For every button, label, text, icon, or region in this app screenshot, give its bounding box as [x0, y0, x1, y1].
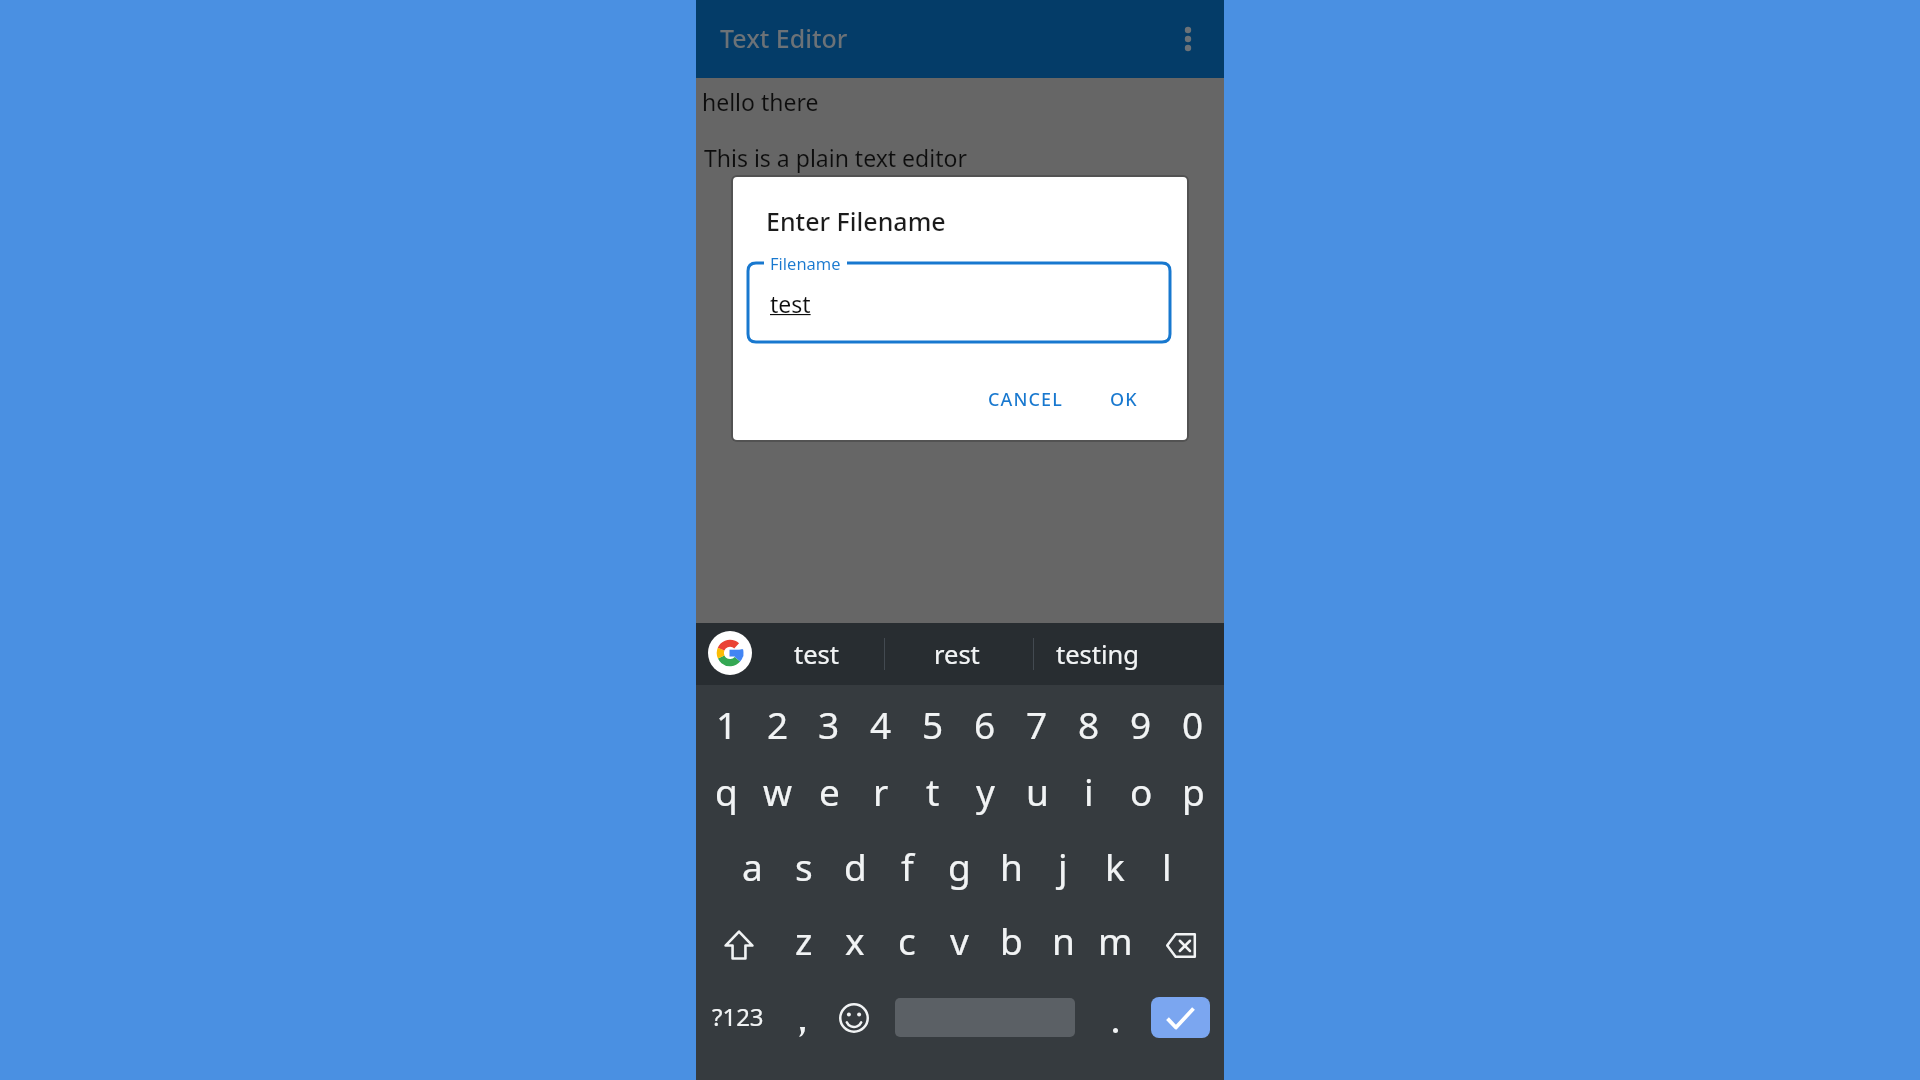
button[interactable]: m: [1089, 903, 1141, 976]
staticText: Enter Filename: [766, 204, 946, 238]
button[interactable]: Shift: [700, 908, 777, 981]
staticText: q: [715, 766, 738, 816]
staticText: hello there: [702, 86, 819, 117]
staticText: b: [1000, 915, 1023, 965]
button[interactable]: ?123: [710, 980, 766, 1053]
button[interactable]: k: [1089, 829, 1141, 902]
staticText: t: [926, 766, 940, 816]
staticText: y: [976, 766, 995, 816]
button[interactable]: 7: [1011, 687, 1063, 760]
staticText: k: [1105, 841, 1125, 891]
staticText: c: [898, 915, 916, 965]
button[interactable]: More options: [1172, 15, 1204, 63]
button[interactable]: y: [959, 754, 1011, 827]
button[interactable]: d: [829, 829, 881, 902]
staticText: e: [819, 766, 840, 816]
button[interactable]: l: [1141, 829, 1193, 902]
staticText: 3: [818, 699, 840, 749]
button[interactable]: i: [1063, 754, 1115, 827]
staticText: x: [845, 915, 865, 965]
button[interactable]: 2: [752, 687, 803, 760]
button[interactable]: test: [747, 623, 887, 685]
staticText: 4: [870, 699, 892, 749]
staticText: 8: [1078, 699, 1100, 749]
button[interactable]: x: [829, 903, 881, 976]
staticText: r: [873, 766, 889, 816]
staticText: OK: [1110, 387, 1138, 412]
staticText: Text Editor: [720, 21, 848, 55]
staticText: CANCEL: [988, 387, 1063, 412]
button[interactable]: j: [1037, 829, 1089, 902]
staticText: 0: [1182, 699, 1204, 749]
staticText: d: [844, 841, 867, 891]
button[interactable]: v: [933, 903, 985, 976]
staticText: l: [1162, 841, 1172, 891]
staticText: v: [950, 915, 969, 965]
button[interactable]: c: [881, 903, 933, 976]
staticText: h: [1000, 841, 1023, 891]
button[interactable]: Done: [1151, 997, 1210, 1038]
button[interactable]: 1: [701, 687, 752, 760]
staticText: 2: [767, 699, 789, 749]
button[interactable]: 9: [1115, 687, 1167, 760]
staticText: n: [1052, 915, 1075, 965]
button[interactable]: Backspace: [1141, 903, 1219, 976]
button[interactable]: g: [933, 829, 985, 902]
staticText: g: [948, 841, 971, 891]
staticText: test: [770, 288, 811, 319]
button[interactable]: e: [803, 754, 855, 827]
staticText: u: [1026, 766, 1049, 816]
staticText: 5: [922, 699, 944, 749]
button[interactable]: t: [907, 754, 959, 827]
button[interactable]: h: [985, 829, 1037, 902]
button[interactable]: [1095, 981, 1135, 1054]
button[interactable]: b: [985, 903, 1037, 976]
button[interactable]: p: [1167, 754, 1219, 827]
button[interactable]: w: [752, 754, 803, 827]
staticText: o: [1130, 766, 1153, 816]
button[interactable]: [783, 981, 823, 1054]
button[interactable]: OK: [1098, 380, 1150, 419]
button[interactable]: q: [701, 754, 752, 827]
staticText: Filename: [770, 252, 841, 274]
button[interactable]: o: [1115, 754, 1167, 827]
staticText: i: [1084, 766, 1094, 816]
button[interactable]: 5: [907, 687, 959, 760]
button[interactable]: Google: [708, 631, 752, 675]
staticText: 1: [716, 699, 738, 749]
button[interactable]: n: [1037, 903, 1089, 976]
staticText: 6: [974, 699, 996, 749]
button[interactable]: testing: [1028, 623, 1168, 685]
staticText: w: [763, 766, 793, 816]
staticText: 9: [1130, 699, 1152, 749]
button[interactable]: u: [1011, 754, 1063, 827]
staticText: s: [795, 841, 813, 891]
button[interactable]: r: [855, 754, 907, 827]
button[interactable]: CANCEL: [976, 380, 1075, 419]
staticText: f: [901, 841, 914, 891]
button[interactable]: Emoji: [834, 981, 874, 1054]
button[interactable]: f: [881, 829, 933, 902]
staticText: ?123: [712, 1000, 764, 1033]
button[interactable]: a: [727, 829, 778, 902]
staticText: rest: [934, 637, 980, 672]
button[interactable]: 8: [1063, 687, 1115, 760]
button[interactable]: 3: [803, 687, 855, 760]
staticText: p: [1182, 766, 1205, 816]
staticText: 7: [1026, 699, 1048, 749]
button[interactable]: 0: [1167, 687, 1219, 760]
staticText: m: [1098, 915, 1133, 965]
staticText: This is a plain text editor: [704, 142, 967, 173]
staticText: j: [1058, 841, 1068, 891]
staticText: testing: [1056, 637, 1140, 672]
button[interactable]: 6: [959, 687, 1011, 760]
staticText: z: [795, 915, 813, 965]
button[interactable]: 4: [855, 687, 907, 760]
button[interactable]: z: [778, 903, 829, 976]
button[interactable]: rest: [887, 623, 1027, 685]
button[interactable]: s: [778, 829, 829, 902]
staticText: a: [742, 841, 763, 891]
staticText: test: [794, 637, 840, 672]
